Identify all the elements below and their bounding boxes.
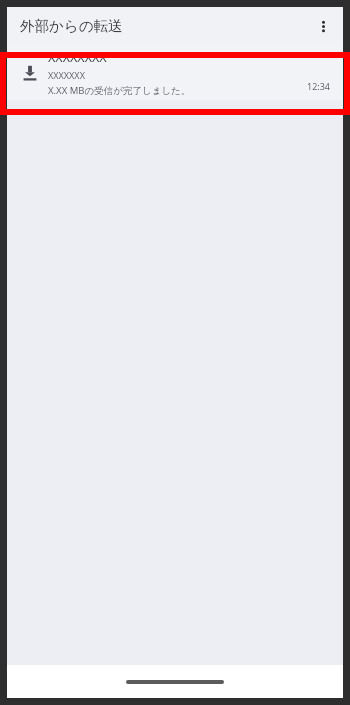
staticText: X.XX MBの受信が完了しました。 [48,84,191,97]
staticText: 外部からの転送 [20,17,123,35]
button[interactable]: More options [307,10,339,42]
staticText: XXXXXXXX [48,49,107,66]
staticText: 12:34 [307,80,331,92]
button[interactable]: Home [126,680,224,684]
button[interactable]: XXXXXXXX [7,45,343,100]
staticText: XXXXXXX [48,69,85,81]
